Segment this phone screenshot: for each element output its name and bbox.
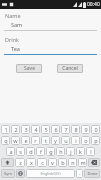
button[interactable]: b — [58, 158, 67, 167]
button[interactable]: Save — [16, 64, 42, 73]
staticText: 00:40 — [87, 1, 100, 8]
button[interactable]: y — [51, 136, 60, 145]
staticText: u — [64, 137, 68, 144]
button[interactable]: 6 — [51, 125, 60, 134]
button[interactable]: w — [11, 136, 20, 145]
button[interactable]: 2 — [11, 125, 20, 134]
button[interactable]: Change language — [16, 169, 25, 178]
button[interactable]: u — [61, 136, 70, 145]
button[interactable]: Done — [84, 169, 100, 178]
staticText: 8 — [74, 126, 78, 133]
button[interactable]: x — [26, 158, 36, 167]
staticText: p — [94, 137, 98, 144]
button[interactable]: s — [16, 147, 25, 156]
staticText: 3 — [24, 126, 28, 133]
button[interactable]: g — [46, 147, 55, 156]
button[interactable]: h — [56, 147, 65, 156]
button[interactable]: Backspace — [88, 158, 100, 167]
button[interactable]: 7 — [61, 125, 70, 134]
button[interactable]: m — [78, 158, 87, 167]
button[interactable]: 1 — [1, 125, 10, 134]
button[interactable]: 5 — [41, 125, 50, 134]
staticText: x — [30, 159, 33, 166]
button[interactable]: j — [66, 147, 75, 156]
staticText: v — [51, 159, 54, 166]
staticText: z — [19, 159, 22, 166]
staticText: Sym — [4, 171, 12, 176]
staticText: 4 — [34, 126, 38, 133]
button[interactable]: e — [21, 136, 30, 145]
staticText: 7 — [64, 126, 68, 133]
staticText: y — [54, 137, 57, 144]
staticText: o — [84, 137, 88, 144]
staticText: Tea — [11, 45, 20, 52]
button[interactable]: o — [81, 136, 90, 145]
button[interactable]: k — [76, 147, 85, 156]
staticText: s — [19, 148, 22, 155]
staticText: English(US) — [40, 171, 61, 176]
staticText: f — [40, 148, 42, 155]
staticText: g — [49, 148, 53, 155]
staticText: 0 — [94, 126, 98, 133]
staticText: k — [79, 148, 82, 155]
staticText: Cancel — [62, 65, 78, 72]
staticText: 2 — [14, 126, 18, 133]
button[interactable]: 4 — [31, 125, 40, 134]
button[interactable]: a — [6, 147, 15, 156]
staticText: w — [13, 137, 18, 144]
button[interactable]: f — [36, 147, 45, 156]
staticText: a — [9, 148, 13, 155]
staticText: Sam — [11, 21, 23, 28]
button[interactable]: z — [15, 158, 25, 167]
staticText: q — [4, 137, 8, 144]
button[interactable]: r — [31, 136, 40, 145]
staticText: Save — [24, 65, 35, 72]
button[interactable]: Cancel — [57, 64, 83, 73]
staticText: j — [70, 148, 72, 155]
button[interactable]: Space — [26, 169, 75, 178]
button[interactable]: c — [37, 158, 47, 167]
staticText: n — [71, 159, 75, 166]
staticText: i — [75, 137, 77, 144]
button[interactable]: Shift — [1, 158, 14, 167]
staticText: h — [59, 148, 63, 155]
staticText: c — [41, 159, 44, 166]
button[interactable]: 0 — [91, 125, 100, 134]
button[interactable]: t — [41, 136, 50, 145]
staticText: Done — [87, 171, 98, 176]
staticText: d — [29, 148, 33, 155]
button[interactable]: . — [76, 169, 83, 178]
staticText: l — [90, 148, 92, 155]
staticText: Drink — [5, 36, 20, 43]
staticText: 5 — [44, 126, 48, 133]
staticText: m — [80, 159, 86, 166]
button[interactable]: 3 — [21, 125, 30, 134]
button[interactable]: v — [48, 158, 57, 167]
staticText: . — [79, 170, 81, 177]
staticText: 9 — [84, 126, 88, 133]
staticText: r — [34, 137, 37, 144]
button[interactable]: n — [68, 158, 77, 167]
button[interactable]: l — [86, 147, 95, 156]
staticText: 1 — [4, 126, 8, 133]
staticText: t — [45, 137, 47, 144]
staticText: Name — [5, 12, 21, 19]
button[interactable]: 8 — [71, 125, 80, 134]
button[interactable]: Sym — [1, 169, 15, 178]
button[interactable]: p — [91, 136, 100, 145]
staticText: e — [24, 137, 28, 144]
staticText: b — [61, 159, 65, 166]
button[interactable]: d — [26, 147, 35, 156]
button[interactable]: q — [1, 136, 10, 145]
button[interactable]: 9 — [81, 125, 90, 134]
staticText: 6 — [54, 126, 58, 133]
button[interactable]: i — [71, 136, 80, 145]
